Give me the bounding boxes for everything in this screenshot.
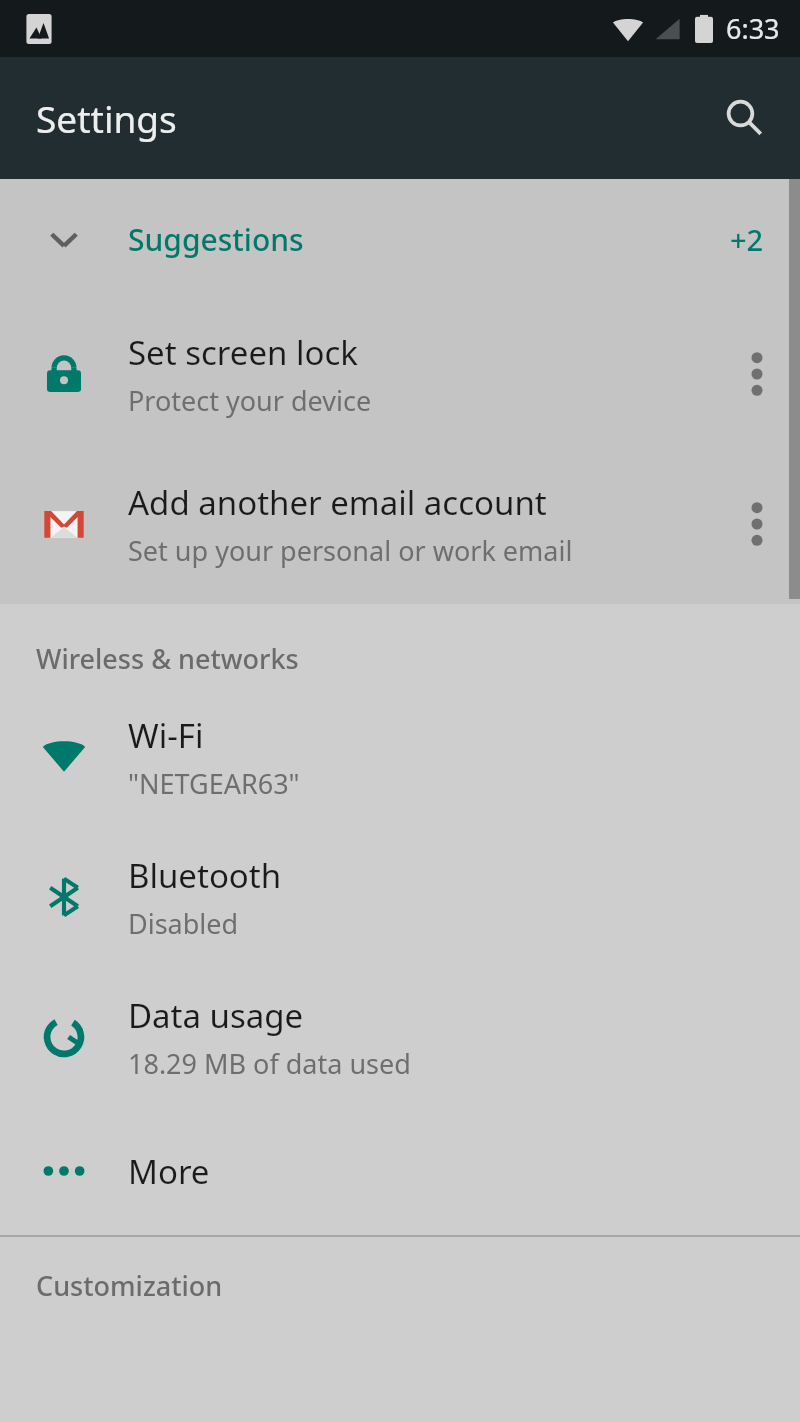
staticText: Set screen lock [128,330,358,375]
staticText: 18.29 MB of data used [128,1045,411,1082]
staticText: Add another email account [128,480,547,525]
staticText: Bluetooth [128,853,282,898]
staticText: Wireless & networks [36,640,299,677]
button[interactable]: Data usage [0,967,800,1107]
button[interactable]: Suggestions [0,179,800,299]
button[interactable]: Set screen lock [0,299,800,449]
button[interactable]: Bluetooth [0,827,800,967]
staticText: More [128,1149,210,1194]
staticText: "NETGEAR63" [128,765,300,802]
staticText: 6:33 [726,10,780,47]
staticText: +2 [730,220,764,259]
staticText: Settings [36,93,177,143]
button[interactable]: More [0,1107,800,1235]
staticText: Wi-Fi [128,713,204,758]
staticText: Set up your personal or work email [128,532,573,569]
staticText: Data usage [128,993,304,1038]
button[interactable]: More options [714,299,800,449]
staticText: Suggestions [128,219,304,260]
button[interactable]: More options [714,449,800,599]
button[interactable]: Wi-Fi [0,687,800,827]
staticText: Protect your device [128,382,372,419]
button[interactable]: Add another email account [0,449,800,599]
button[interactable]: Search [708,82,780,154]
staticText: Disabled [128,905,239,942]
staticText: Customization [36,1267,223,1304]
